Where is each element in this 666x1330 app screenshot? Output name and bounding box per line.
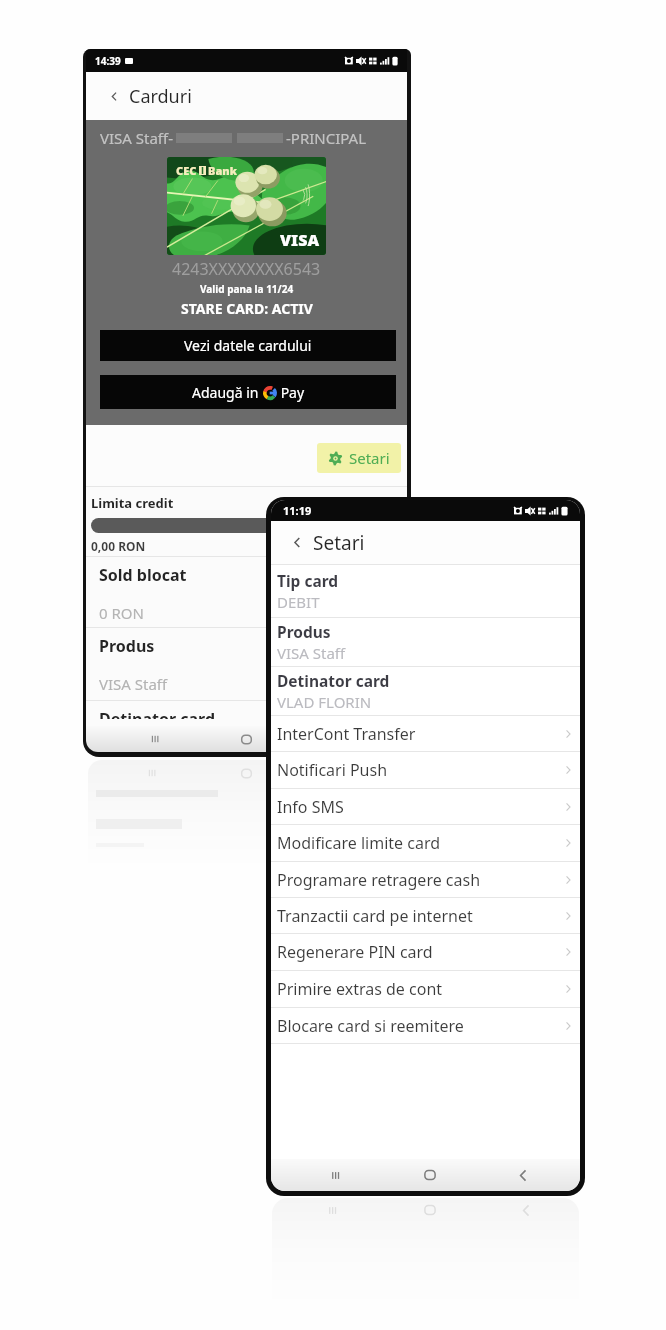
staticText: VISA Staff-: [100, 128, 174, 148]
button[interactable]: Sold blocat: [86, 557, 407, 627]
button[interactable]: Back: [329, 731, 345, 747]
button[interactable]: Back: [515, 1167, 532, 1184]
staticText: Vezi datele cardului: [184, 336, 312, 355]
staticText: Setari: [313, 530, 365, 556]
staticText: VISA: [280, 229, 319, 251]
button[interactable]: Produs: [86, 628, 407, 700]
staticText: Pay: [277, 383, 305, 402]
button[interactable]: Back: [108, 90, 121, 103]
button[interactable]: Adaugă in: [100, 375, 396, 409]
button[interactable]: Regenerare PIN card: [271, 934, 580, 970]
staticText: Limita credit: [91, 494, 174, 512]
staticText: Produs: [277, 621, 331, 642]
staticText: Produs: [99, 635, 155, 657]
staticText: VISA Staff: [277, 643, 346, 663]
button[interactable]: Modificare limite card: [271, 825, 580, 861]
staticText: 0,00 RON: [91, 538, 146, 554]
staticText: VISA Staff: [99, 674, 168, 694]
button[interactable]: Limita credit: [86, 487, 407, 556]
staticText: Programare retragere cash: [277, 869, 481, 891]
staticText: Regenerare PIN card: [277, 941, 433, 963]
button[interactable]: Tranzactii card pe internet: [271, 898, 580, 933]
staticText: Info SMS: [277, 796, 344, 818]
button[interactable]: Detinator card: [86, 701, 407, 726]
button[interactable]: Notificari Push: [271, 752, 580, 788]
button[interactable]: Recent apps: [327, 1167, 344, 1184]
staticText: VLAD FLORIN: [277, 692, 372, 712]
button[interactable]: Blocare card si reemitere: [271, 1008, 580, 1043]
other: Recent apps: [324, 1202, 341, 1219]
button[interactable]: Setari: [317, 443, 401, 473]
button[interactable]: Recent apps: [147, 731, 163, 747]
staticText: 4243XXXXXXXX6543: [172, 258, 321, 280]
button[interactable]: InterCont Transfer: [271, 716, 580, 751]
button[interactable]: Produs: [271, 618, 580, 666]
button[interactable]: Tip card: [271, 565, 580, 617]
button[interactable]: Back: [290, 535, 305, 550]
staticText: Bank: [208, 163, 237, 178]
other: Home: [239, 766, 254, 781]
staticText: Tip card: [277, 570, 339, 591]
staticText: Notificari Push: [277, 759, 388, 781]
button[interactable]: Vezi datele cardului: [100, 330, 396, 361]
staticText: 0 RON: [99, 603, 144, 623]
staticText: Adaugă in: [192, 383, 263, 402]
button[interactable]: Back: [271, 521, 580, 564]
staticText: Blocare card si reemitere: [277, 1015, 464, 1037]
staticText: Primire extras de cont: [277, 978, 443, 1000]
staticText: DEBIT: [277, 592, 320, 612]
other: Recent apps: [144, 765, 160, 781]
staticText: Valid pana la 11/24: [200, 282, 294, 296]
staticText: Detinator card: [277, 670, 390, 691]
staticText: -PRINCIPAL: [286, 128, 367, 148]
staticText: Tranzactii card pe internet: [277, 905, 473, 927]
staticText: STARE CARD: ACTIV: [181, 299, 313, 318]
staticText: InterCont Transfer: [277, 723, 416, 745]
other: Home: [422, 1202, 438, 1218]
staticText: Sold blocat: [99, 564, 187, 586]
button[interactable]: Home: [239, 732, 254, 747]
staticText: Modificare limite card: [277, 832, 441, 854]
staticText: 14:39: [95, 54, 121, 68]
button[interactable]: Back: [86, 72, 407, 120]
button[interactable]: Detinator card: [271, 667, 580, 715]
button[interactable]: Home: [422, 1167, 438, 1183]
staticText: 11:19: [283, 503, 312, 518]
staticText: Carduri: [129, 84, 192, 109]
button[interactable]: Info SMS: [271, 789, 580, 824]
staticText: CEC: [176, 163, 197, 178]
staticText: Setari: [349, 448, 390, 468]
staticText: Detinator card: [99, 708, 216, 719]
button[interactable]: Primire extras de cont: [271, 971, 580, 1007]
button[interactable]: Programare retragere cash: [271, 862, 580, 897]
